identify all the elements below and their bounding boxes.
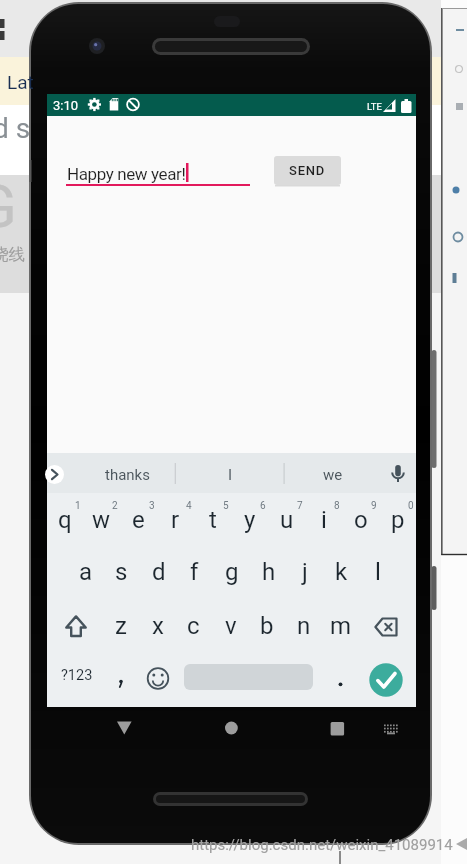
- button[interactable]: k: [323, 547, 360, 597]
- button[interactable]: [322, 658, 358, 698]
- button[interactable]: we: [293, 457, 373, 493]
- staticText: a: [79, 558, 93, 586]
- button[interactable]: c: [175, 601, 212, 651]
- button[interactable]: [364, 605, 408, 649]
- staticText: y: [244, 506, 256, 534]
- staticText: 1: [75, 500, 81, 512]
- button[interactable]: y: [231, 495, 268, 545]
- staticText: v: [225, 612, 237, 640]
- staticText: l: [375, 558, 381, 586]
- button[interactable]: s: [103, 547, 140, 597]
- button[interactable]: r: [157, 495, 194, 545]
- button[interactable]: l: [359, 547, 396, 597]
- button[interactable]: [105, 709, 145, 746]
- staticText: r: [171, 506, 180, 534]
- staticText: t: [209, 506, 217, 534]
- staticText: q: [58, 506, 72, 534]
- button[interactable]: b: [248, 601, 285, 651]
- button[interactable]: ?123: [49, 653, 105, 697]
- staticText: z: [115, 612, 127, 640]
- button[interactable]: x: [139, 601, 176, 651]
- button[interactable]: thanks: [77, 457, 177, 493]
- staticText: g: [225, 558, 239, 586]
- staticText: w: [92, 506, 111, 534]
- staticText: 3:10: [53, 98, 79, 113]
- staticText: m: [330, 612, 352, 640]
- staticText: f: [190, 558, 199, 586]
- button[interactable]: [369, 663, 403, 697]
- staticText: j: [302, 558, 308, 586]
- button[interactable]: v: [212, 601, 249, 651]
- button[interactable]: o: [342, 495, 379, 545]
- staticText: p: [391, 506, 405, 534]
- button[interactable]: u: [268, 495, 305, 545]
- staticText: s: [115, 558, 128, 586]
- staticText: 3: [149, 500, 155, 512]
- staticText: e: [132, 506, 145, 534]
- staticText: u: [280, 506, 294, 534]
- button[interactable]: f: [176, 547, 213, 597]
- button[interactable]: [54, 604, 98, 648]
- staticText: 7: [297, 500, 303, 512]
- staticText: 8: [334, 500, 340, 512]
- staticText: d s: [0, 112, 31, 145]
- button[interactable]: I: [185, 457, 275, 493]
- button[interactable]: e: [120, 495, 157, 545]
- staticText: we: [323, 466, 343, 484]
- button[interactable]: [317, 709, 357, 746]
- staticText: i: [321, 506, 327, 534]
- button[interactable]: [376, 714, 406, 742]
- staticText: Happy new year!: [67, 164, 186, 184]
- button[interactable]: [211, 709, 251, 746]
- button[interactable]: j: [286, 547, 323, 597]
- staticText: x: [152, 612, 164, 640]
- staticText: 6: [260, 500, 266, 512]
- staticText: c: [187, 612, 200, 640]
- button[interactable]: t: [194, 495, 231, 545]
- button[interactable]: [138, 658, 178, 698]
- staticText: b: [260, 612, 274, 640]
- staticText: k: [335, 558, 348, 586]
- staticText: G: [0, 171, 17, 241]
- staticText: 5: [223, 500, 229, 512]
- button[interactable]: i: [305, 495, 342, 545]
- button[interactable]: d: [140, 547, 177, 597]
- staticText: 2: [112, 500, 118, 512]
- button[interactable]: m: [322, 601, 359, 651]
- staticText: n: [297, 612, 311, 640]
- button[interactable]: SEND: [274, 156, 341, 185]
- staticText: 0: [408, 500, 414, 512]
- button[interactable]: a: [67, 547, 104, 597]
- staticText: ?123: [61, 667, 93, 684]
- staticText: h: [262, 558, 276, 586]
- button[interactable]: p: [379, 495, 416, 545]
- staticText: SEND: [289, 163, 326, 178]
- button[interactable]: h: [250, 547, 287, 597]
- staticText: 4: [186, 500, 192, 512]
- staticText: 绕线: [0, 244, 25, 265]
- staticText: https://blog.csdn.net/weixin_41089914: [191, 836, 453, 854]
- button[interactable]: w: [83, 495, 120, 545]
- staticText: o: [354, 506, 368, 534]
- staticText: Lat: [7, 71, 34, 93]
- staticText: d: [152, 558, 166, 586]
- button[interactable]: z: [102, 601, 139, 651]
- button[interactable]: q: [46, 495, 83, 545]
- staticText: I: [228, 466, 233, 484]
- button[interactable]: g: [213, 547, 250, 597]
- button[interactable]: [103, 658, 139, 698]
- staticText: 9: [371, 500, 377, 512]
- button[interactable]: n: [285, 601, 322, 651]
- staticText: thanks: [105, 466, 150, 484]
- staticText: LTE: [367, 101, 382, 112]
